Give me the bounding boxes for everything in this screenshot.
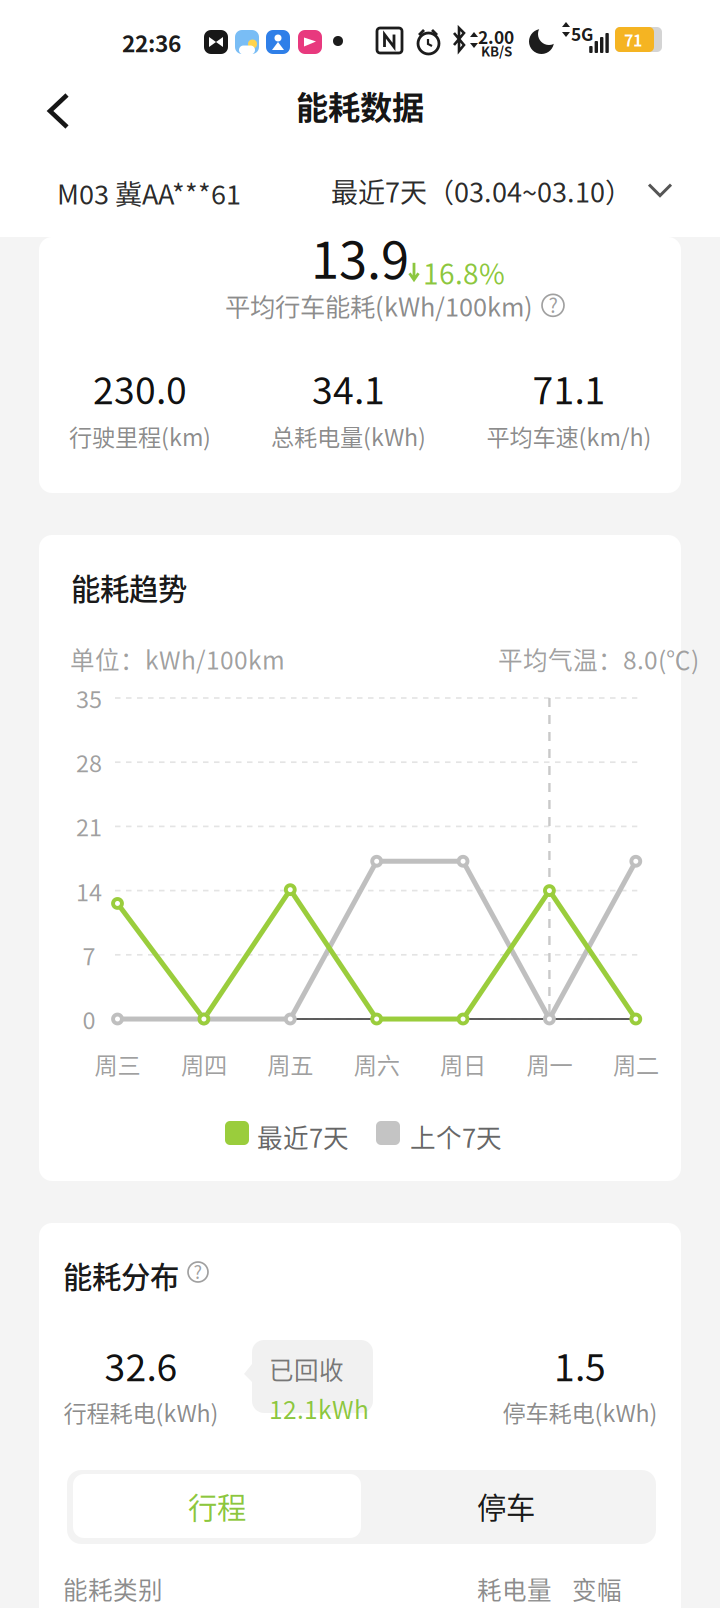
button[interactable]: 停车 (362, 1474, 650, 1538)
staticText: 能耗趋势 (71, 566, 187, 608)
staticText: 行程 (188, 1485, 246, 1527)
staticText: 最近7天 (257, 1118, 349, 1155)
staticText: 行程耗电(kWh) (63, 1395, 218, 1429)
staticText: 5G (571, 21, 593, 46)
staticText: 32.6 (104, 1338, 177, 1392)
staticText: 周二 (613, 1047, 659, 1081)
staticText: 平均车速(km/h) (486, 419, 651, 453)
staticText: 周三 (94, 1047, 140, 1081)
staticText: KB/S (481, 41, 512, 60)
staticText: 28 (76, 745, 102, 779)
staticText: 耗电量 (477, 1571, 552, 1606)
staticText: 能耗类别 (63, 1571, 163, 1606)
staticText: 停车 (477, 1485, 535, 1527)
staticText: 单位：kWh/100km (70, 641, 285, 676)
staticText: 12.1kWh (269, 1390, 369, 1426)
staticText: 最近7天（03.04~03.10） (331, 171, 632, 210)
staticText: 13.9 (311, 220, 409, 293)
staticText: 周日 (440, 1047, 486, 1081)
staticText: 21 (76, 809, 102, 843)
button[interactable]: 返回 (28, 76, 88, 146)
staticText: 34.1 (312, 361, 385, 415)
staticText: ? (193, 1258, 202, 1284)
staticText: 周五 (267, 1047, 313, 1081)
staticText: 周一 (526, 1047, 572, 1081)
staticText: 71 (624, 28, 642, 51)
staticText: 能耗分布 (63, 1254, 179, 1296)
staticText: 变幅 (572, 1571, 622, 1606)
staticText: 2.00 (478, 24, 514, 49)
staticText: 平均气温：8.0(℃) (498, 641, 699, 676)
staticText: 总耗电量(kWh) (271, 419, 426, 453)
staticText: 周四 (181, 1047, 227, 1081)
staticText: 行驶里程(km) (69, 419, 211, 453)
staticText: 停车耗电(kWh) (502, 1395, 657, 1429)
staticText: 平均行车能耗(kWh/100km) (225, 287, 533, 324)
button[interactable]: 行程 (73, 1474, 361, 1538)
staticText: 14 (76, 874, 102, 908)
staticText: 16.8% (423, 252, 505, 292)
staticText: 已回收 (269, 1351, 344, 1386)
staticText: 上个7天 (410, 1118, 502, 1155)
staticText: ? (548, 290, 557, 319)
staticText: 22:36 (122, 26, 181, 59)
staticText: 周六 (354, 1047, 400, 1081)
staticText: 230.0 (93, 361, 187, 415)
staticText: 1.5 (554, 1338, 606, 1392)
staticText: 71.1 (532, 361, 605, 415)
staticText: 0 (82, 1002, 95, 1036)
staticText: 能耗数据 (296, 82, 424, 129)
staticText: M03 冀AA***61 (57, 173, 241, 212)
button[interactable]: 最近7天（03.04~03.10） (331, 159, 672, 222)
staticText: 7 (82, 938, 95, 972)
staticText: 35 (76, 681, 102, 715)
